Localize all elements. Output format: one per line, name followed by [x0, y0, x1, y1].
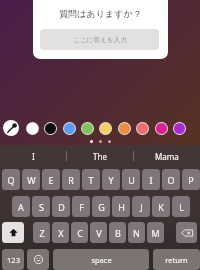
staticText: space — [91, 255, 112, 265]
staticText: M — [151, 227, 160, 239]
button[interactable]: V — [90, 222, 107, 243]
staticText: E — [48, 174, 54, 186]
button[interactable]: T — [82, 169, 100, 190]
staticText: F — [79, 201, 84, 213]
button[interactable]: I — [142, 169, 160, 190]
button[interactable]: Mama — [134, 145, 200, 167]
button[interactable] — [173, 122, 186, 135]
button[interactable]: C — [71, 222, 88, 243]
staticText: D — [58, 201, 65, 213]
button[interactable]: P — [182, 169, 200, 190]
staticText: Z — [39, 227, 45, 239]
staticText: U — [128, 174, 135, 186]
button[interactable]: E — [42, 169, 60, 190]
button[interactable]: Emoji — [27, 249, 49, 270]
button[interactable]: L — [172, 196, 190, 217]
staticText: I — [149, 174, 153, 186]
button[interactable]: R — [62, 169, 80, 190]
button[interactable] — [99, 122, 112, 135]
button[interactable]: Z — [33, 222, 50, 243]
button[interactable]: J — [132, 196, 150, 217]
button[interactable] — [81, 122, 94, 135]
button[interactable]: U — [122, 169, 140, 190]
button[interactable] — [44, 122, 57, 135]
button[interactable]: The — [67, 145, 133, 167]
staticText: N — [133, 227, 140, 239]
button[interactable]: Shift — [2, 222, 24, 243]
staticText: J — [140, 201, 143, 213]
button[interactable]: W — [22, 169, 40, 190]
staticText: V — [96, 227, 102, 239]
button[interactable]: N — [128, 222, 145, 243]
staticText: G — [98, 201, 105, 213]
staticText: X — [58, 227, 64, 239]
button[interactable]: H — [112, 196, 130, 217]
staticText: S — [39, 201, 44, 213]
staticText: A — [18, 201, 24, 213]
staticText: The — [93, 151, 107, 162]
staticText: Mama — [155, 151, 179, 162]
button[interactable]: B — [109, 222, 126, 243]
button[interactable]: S — [32, 196, 50, 217]
button[interactable]: M — [147, 222, 164, 243]
staticText: 質問はありますか？ — [33, 8, 168, 19]
staticText: P — [188, 174, 194, 186]
button[interactable] — [118, 122, 131, 135]
staticText: ここに答えを入力 — [73, 36, 127, 44]
button[interactable]: F — [72, 196, 90, 217]
staticText: I — [32, 151, 35, 162]
button[interactable]: Backspace — [176, 222, 197, 243]
button[interactable]: Y — [102, 169, 120, 190]
button[interactable] — [136, 122, 149, 135]
button[interactable]: Q — [2, 169, 20, 190]
button[interactable]: K — [152, 196, 170, 217]
staticText: R — [68, 174, 74, 186]
staticText: H — [118, 201, 125, 213]
button[interactable]: ここに答えを入力 — [40, 29, 159, 50]
button[interactable]: Colour picker — [3, 120, 19, 136]
staticText: Q — [7, 174, 15, 186]
button[interactable]: D — [52, 196, 70, 217]
staticText: O — [167, 174, 175, 186]
staticText: 123 — [7, 255, 20, 265]
staticText: Y — [108, 174, 114, 186]
button[interactable]: return — [153, 249, 200, 270]
staticText: W — [27, 174, 36, 186]
staticText: K — [158, 201, 164, 213]
button[interactable]: space — [53, 249, 149, 270]
button[interactable]: O — [162, 169, 180, 190]
staticText: B — [115, 227, 121, 239]
button[interactable]: G — [92, 196, 110, 217]
button[interactable]: 123 — [2, 249, 24, 270]
button[interactable]: X — [52, 222, 69, 243]
staticText: return — [165, 255, 188, 265]
staticText: C — [77, 227, 83, 239]
button[interactable] — [63, 122, 76, 135]
staticText: T — [88, 174, 94, 186]
button[interactable] — [26, 122, 39, 135]
button[interactable]: A — [12, 196, 30, 217]
button[interactable]: I — [0, 145, 66, 167]
button[interactable] — [155, 122, 168, 135]
staticText: L — [179, 201, 184, 213]
